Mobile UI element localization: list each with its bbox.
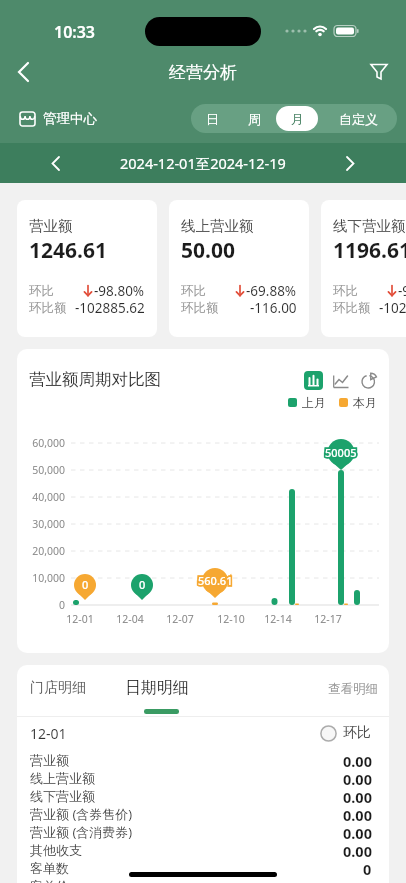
button[interactable]: 线上营业额 [181, 200, 297, 337]
button[interactable]: 线下营业额 [333, 200, 406, 337]
button[interactable] [304, 371, 323, 390]
staticText: 560.61 [198, 573, 233, 588]
staticText: 管理中心 [43, 110, 97, 127]
staticText: 0 [82, 577, 89, 592]
staticText: 周 [248, 111, 261, 127]
button[interactable]: 日 [191, 104, 233, 133]
staticText: 0 [82, 577, 89, 592]
staticText: 环比 [29, 283, 54, 299]
button[interactable]: 月 [275, 104, 319, 133]
staticText: 0.00 [343, 823, 372, 841]
staticText: 环比额 [181, 300, 219, 316]
staticText: 日 [206, 111, 219, 127]
button[interactable]: 门店明细 [30, 679, 86, 697]
staticText: 50005 [325, 445, 357, 460]
button[interactable]: 营业额 [29, 200, 145, 337]
button[interactable]: 管理中心 [18, 109, 97, 128]
staticText: 12-01 [30, 724, 67, 743]
staticText: 环比 [333, 283, 358, 299]
staticText: 0.00 [343, 841, 372, 859]
staticText: 1246.61 [29, 236, 107, 265]
staticText: 1196.61 [333, 236, 406, 265]
button[interactable]: 查看明细 [328, 681, 378, 697]
button[interactable] [333, 373, 349, 389]
staticText: 客单价 [30, 878, 69, 883]
staticText: 线上营业额 [181, 217, 254, 235]
staticText: 12-07 [158, 612, 202, 626]
staticText: 线下营业额 [333, 217, 406, 235]
staticText: 线上营业额 [30, 770, 95, 786]
staticText: 其他收支 [30, 842, 82, 858]
staticText: 0.00 [343, 769, 372, 787]
staticText: 0 [363, 859, 372, 877]
button[interactable] [346, 156, 355, 171]
staticText: -102885.62 [75, 299, 145, 316]
staticText: 本月 [353, 395, 377, 410]
staticText: 12-10 [209, 612, 253, 626]
staticText: 20,000 [17, 544, 65, 558]
staticText: 0 [17, 598, 65, 612]
button[interactable]: 日期明细 [125, 678, 189, 698]
button[interactable]: 环比 [320, 724, 371, 742]
button[interactable] [361, 373, 377, 389]
staticText: 12-14 [256, 612, 300, 626]
staticText: 环比 [181, 283, 206, 299]
staticText: 营业额 [29, 217, 73, 235]
staticText: 50,000 [17, 463, 65, 477]
staticText: 经营分析 [169, 62, 237, 83]
staticText: 营业额 (含消费券) [30, 823, 133, 841]
staticText: 12-01 [58, 612, 102, 626]
staticText: 10,000 [17, 571, 65, 585]
staticText: 环比 [343, 724, 371, 742]
staticText: 12-04 [108, 612, 152, 626]
button[interactable] [51, 156, 60, 171]
staticText: -69.88% [246, 282, 297, 299]
staticText: 60,000 [17, 436, 65, 450]
staticText: 0 [139, 577, 146, 592]
staticText: 环比额 [333, 300, 371, 316]
staticText: -98.81% [398, 282, 406, 299]
staticText: 12-17 [306, 612, 350, 626]
staticText: 月 [291, 111, 304, 127]
staticText: 自定义 [339, 111, 378, 127]
staticText: -102769.62 [379, 299, 406, 316]
staticText: 客单数 [30, 860, 69, 876]
staticText: 2024-12-01至2024-12-19 [120, 153, 286, 173]
button[interactable]: 自定义 [319, 104, 397, 133]
staticText: 营业额周期对比图 [29, 369, 161, 390]
button[interactable] [357, 50, 401, 94]
staticText: 营业额 (含券售价) [30, 805, 133, 823]
staticText: 0.00 [343, 751, 372, 769]
staticText: 0.00 [343, 805, 372, 823]
staticText: 0 [139, 577, 146, 592]
staticText: 线下营业额 [30, 788, 95, 804]
button[interactable]: 周 [233, 104, 275, 133]
button[interactable] [0, 50, 48, 94]
staticText: -98.80% [94, 282, 145, 299]
staticText: 40,000 [17, 490, 65, 504]
staticText: 560.61 [198, 573, 233, 588]
staticText: 50005 [325, 445, 357, 460]
staticText: 0.00 [343, 787, 372, 805]
staticText: 10:33 [54, 21, 96, 43]
staticText: 30,000 [17, 517, 65, 531]
staticText: 50.00 [181, 236, 235, 265]
staticText: 环比额 [29, 300, 67, 316]
staticText: -116.00 [250, 299, 297, 316]
staticText: 上月 [302, 395, 326, 410]
staticText: 营业额 [30, 752, 69, 768]
